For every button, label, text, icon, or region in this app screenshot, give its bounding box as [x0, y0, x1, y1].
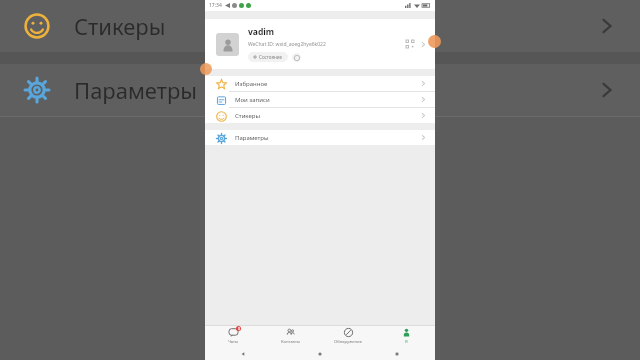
button[interactable]: back — [205, 347, 281, 360]
button[interactable]: Status emoji — [292, 53, 301, 62]
button[interactable]: 3 — [205, 325, 262, 347]
staticText: vadim — [248, 26, 275, 38]
button[interactable]: Параметры — [205, 130, 435, 145]
button[interactable]: recents — [358, 347, 435, 360]
button[interactable]: Избранное — [205, 76, 435, 91]
button[interactable]: vadim — [205, 19, 435, 69]
staticText: Стикеры — [235, 112, 260, 120]
button[interactable]: Состояние — [248, 52, 288, 62]
button[interactable]: Я — [377, 325, 435, 347]
button[interactable]: Мои записи — [205, 92, 435, 107]
button[interactable]: home — [281, 347, 358, 360]
staticText: WeChat ID: wxid_aoeg2hye6k022 — [248, 41, 326, 48]
staticText: Стикеры — [74, 11, 166, 41]
staticText: Обнаружение — [334, 339, 363, 345]
staticText: Контакты — [281, 339, 301, 345]
staticText: Избранное — [235, 80, 268, 88]
staticText: Мои записи — [235, 96, 270, 104]
staticText: 3 — [238, 327, 240, 331]
button[interactable]: Параметры — [0, 64, 640, 116]
staticText: Чаты — [228, 339, 239, 345]
staticText: Состояние — [259, 54, 283, 60]
button[interactable]: Контакты — [262, 325, 319, 347]
staticText: Параметры — [74, 75, 198, 105]
staticText: Я — [405, 339, 408, 345]
button[interactable]: Стикеры — [0, 0, 640, 52]
staticText: Параметры — [235, 134, 269, 142]
staticText: 17:34 — [209, 2, 222, 9]
button[interactable]: Обнаружение — [319, 325, 377, 347]
button[interactable]: Стикеры — [205, 108, 435, 123]
button[interactable]: My QR code — [406, 40, 414, 48]
